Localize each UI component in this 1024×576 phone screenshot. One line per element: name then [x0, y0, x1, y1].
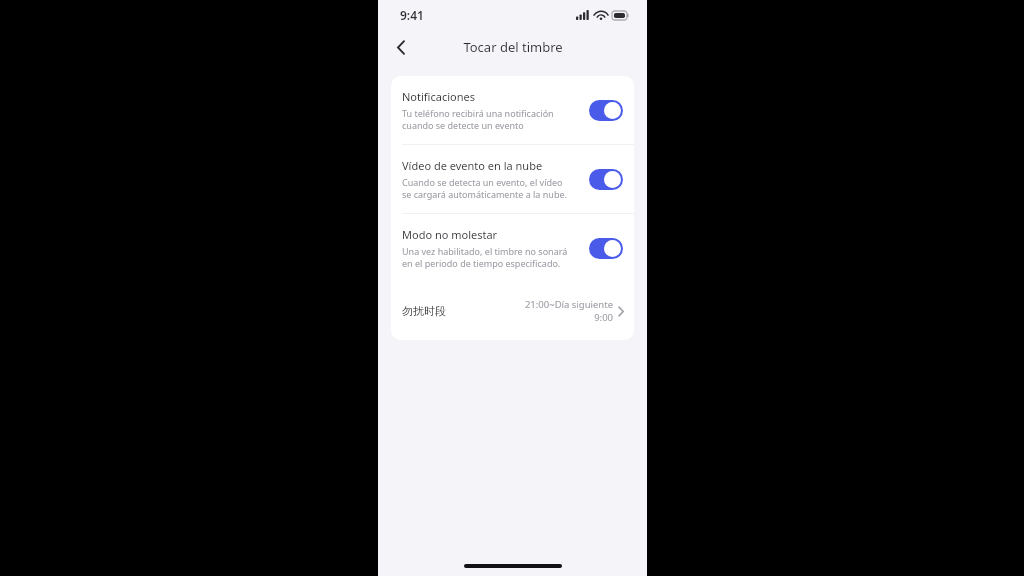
staticText: 勿扰时段 — [402, 304, 446, 318]
button[interactable]: Notificaciones — [391, 76, 634, 144]
staticText: se cargará automáticamente a la nube. — [402, 188, 567, 200]
staticText: Vídeo de evento en la nube — [402, 158, 543, 173]
staticText: Modo no molestar — [402, 227, 498, 242]
staticText: Notificaciones — [402, 89, 475, 104]
staticText: cuando se detecte un evento — [402, 119, 524, 131]
staticText: 9:00 — [594, 311, 613, 324]
button[interactable]: Toggle on — [589, 238, 623, 259]
staticText: en el periodo de tiempo especificado. — [402, 257, 561, 269]
button[interactable]: Back — [386, 32, 416, 62]
staticText: Cuando se detecta un evento, el vídeo — [402, 176, 563, 188]
staticText: Tocar del timbre — [463, 38, 563, 56]
button[interactable]: 勿扰时段 — [391, 282, 634, 340]
staticText: Tu teléfono recibirá una notificación — [402, 107, 554, 119]
staticText: 9:41 — [400, 7, 424, 23]
staticText: 21:00~Día siguiente — [524, 298, 613, 311]
button[interactable]: Vídeo de evento en la nube — [391, 145, 634, 213]
button[interactable]: Toggle on — [589, 100, 623, 121]
button[interactable]: Modo no molestar — [391, 214, 634, 282]
button[interactable]: Toggle on — [589, 169, 623, 190]
staticText: Una vez habilitado, el timbre no sonará — [402, 245, 568, 257]
